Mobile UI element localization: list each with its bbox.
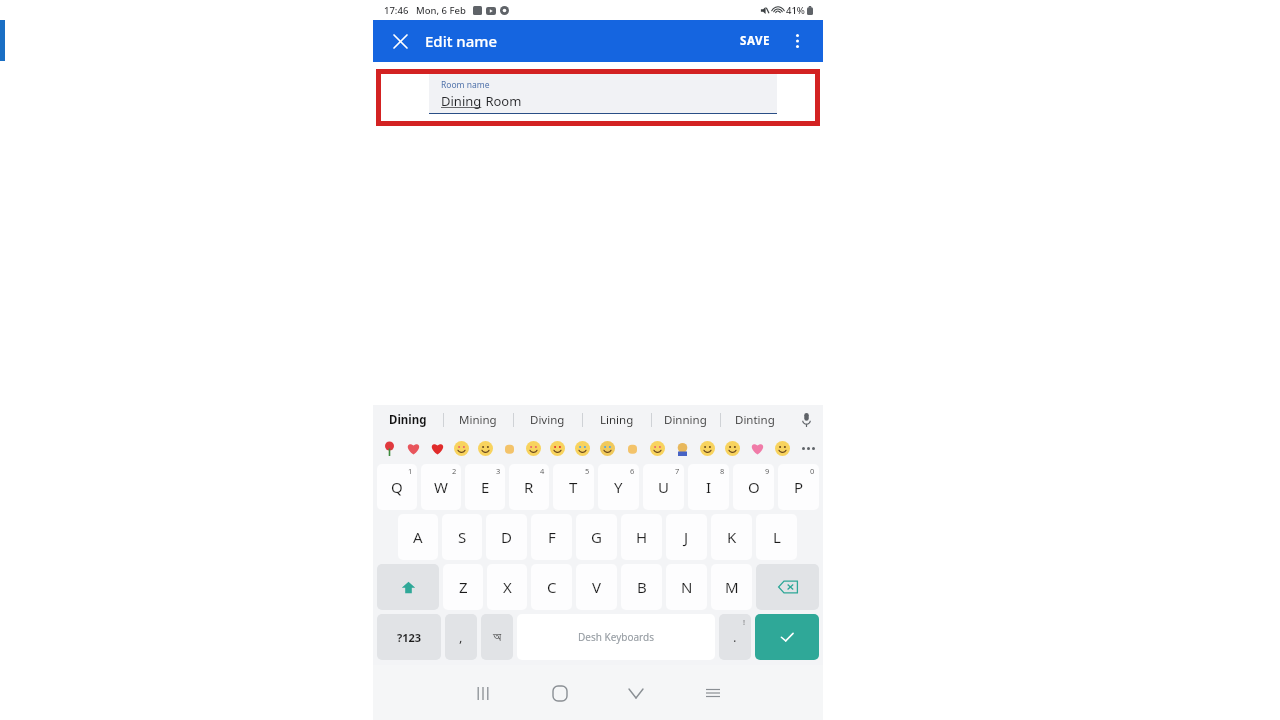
- button[interactable]: Emoji: [595, 435, 620, 461]
- button[interactable]: Emoji: [425, 435, 449, 461]
- button[interactable]: E: [465, 464, 505, 510]
- staticText: Edit name: [425, 31, 498, 51]
- staticText: 17:46: [384, 4, 409, 17]
- staticText: Diving: [530, 412, 565, 428]
- button[interactable]: Emoji: [449, 435, 473, 461]
- button[interactable]: SAVE: [734, 28, 777, 54]
- staticText: 5: [585, 466, 590, 476]
- button[interactable]: Q: [377, 464, 417, 510]
- staticText: Z: [459, 577, 468, 597]
- button[interactable]: A: [398, 514, 438, 560]
- button[interactable]: J: [666, 514, 707, 560]
- button[interactable]: ?123: [377, 614, 441, 660]
- staticText: 6: [630, 466, 635, 476]
- staticText: M: [725, 577, 739, 597]
- button[interactable]: Close: [387, 28, 413, 54]
- staticText: H: [636, 527, 648, 547]
- button[interactable]: V: [576, 564, 617, 610]
- button[interactable]: Emoji: [570, 435, 595, 461]
- staticText: অ: [493, 631, 502, 644]
- button[interactable]: Shift: [377, 564, 439, 610]
- staticText: I: [706, 477, 712, 497]
- button[interactable]: C: [531, 564, 572, 610]
- staticText: Dinning: [664, 412, 707, 428]
- button[interactable]: Change language: [481, 614, 513, 660]
- staticText: SAVE: [740, 33, 771, 49]
- button[interactable]: Emoji: [695, 435, 720, 461]
- button[interactable]: M: [711, 564, 752, 610]
- button[interactable]: Mining: [443, 405, 513, 435]
- staticText: Dinting: [735, 412, 775, 428]
- button[interactable]: Enter: [755, 614, 819, 660]
- staticText: Q: [391, 477, 403, 497]
- staticText: 3: [496, 466, 501, 476]
- button[interactable]: Backspace: [756, 564, 819, 610]
- staticText: 41%: [786, 4, 805, 17]
- staticText: Dining: [441, 92, 482, 110]
- button[interactable]: Y: [598, 464, 639, 510]
- staticText: F: [548, 527, 556, 547]
- staticText: Lining: [600, 412, 634, 428]
- button[interactable]: K: [711, 514, 752, 560]
- staticText: V: [592, 577, 602, 597]
- button[interactable]: Dinning: [651, 405, 720, 435]
- staticText: !: [743, 617, 746, 627]
- button[interactable]: Period: [719, 614, 751, 660]
- staticText: S: [458, 527, 467, 547]
- button[interactable]: H: [621, 514, 662, 560]
- staticText: T: [569, 477, 578, 497]
- button[interactable]: Hide keyboard: [619, 676, 653, 710]
- button[interactable]: I: [688, 464, 729, 510]
- button[interactable]: D: [486, 514, 527, 560]
- staticText: R: [524, 477, 534, 497]
- button[interactable]: Voice input: [789, 405, 823, 435]
- staticText: Dining: [389, 412, 427, 428]
- button[interactable]: Z: [443, 564, 483, 610]
- button[interactable]: O: [733, 464, 774, 510]
- button[interactable]: More options: [785, 29, 809, 53]
- button[interactable]: Dinting: [720, 405, 789, 435]
- button[interactable]: Emoji: [545, 435, 570, 461]
- button[interactable]: Emoji: [521, 435, 545, 461]
- button[interactable]: F: [531, 514, 572, 560]
- button[interactable]: Emoji: [770, 435, 795, 461]
- button[interactable]: Emoji: [377, 435, 401, 461]
- button[interactable]: Space: [517, 614, 715, 660]
- button[interactable]: N: [666, 564, 707, 610]
- button[interactable]: Room name: [429, 74, 777, 114]
- button[interactable]: Emoji: [620, 435, 645, 461]
- button[interactable]: Keyboard settings: [696, 676, 730, 710]
- staticText: 7: [675, 466, 680, 476]
- button[interactable]: Emoji: [670, 435, 695, 461]
- button[interactable]: S: [442, 514, 482, 560]
- staticText: 8: [720, 466, 725, 476]
- button[interactable]: Emoji: [401, 435, 425, 461]
- staticText: 1: [408, 466, 413, 476]
- button[interactable]: Emoji: [645, 435, 670, 461]
- button[interactable]: X: [487, 564, 527, 610]
- button[interactable]: Emoji: [720, 435, 745, 461]
- button[interactable]: P: [778, 464, 819, 510]
- button[interactable]: Emoji: [497, 435, 521, 461]
- staticText: X: [503, 577, 512, 597]
- staticText: Y: [614, 477, 623, 497]
- button[interactable]: W: [421, 464, 461, 510]
- button[interactable]: Recents: [466, 676, 500, 710]
- staticText: 2: [452, 466, 457, 476]
- button[interactable]: Diving: [513, 405, 582, 435]
- button[interactable]: More emoji: [795, 435, 821, 461]
- button[interactable]: U: [643, 464, 684, 510]
- button[interactable]: Home: [543, 676, 577, 710]
- button[interactable]: L: [756, 514, 797, 560]
- button[interactable]: Comma: [445, 614, 477, 660]
- button[interactable]: T: [553, 464, 594, 510]
- button[interactable]: R: [509, 464, 549, 510]
- button[interactable]: Emoji: [473, 435, 497, 461]
- button[interactable]: G: [576, 514, 617, 560]
- staticText: Desh Keyboards: [578, 630, 654, 644]
- button[interactable]: Lining: [582, 405, 651, 435]
- button[interactable]: Emoji: [745, 435, 770, 461]
- staticText: O: [748, 477, 760, 497]
- button[interactable]: B: [621, 564, 662, 610]
- button[interactable]: Dining: [373, 405, 443, 435]
